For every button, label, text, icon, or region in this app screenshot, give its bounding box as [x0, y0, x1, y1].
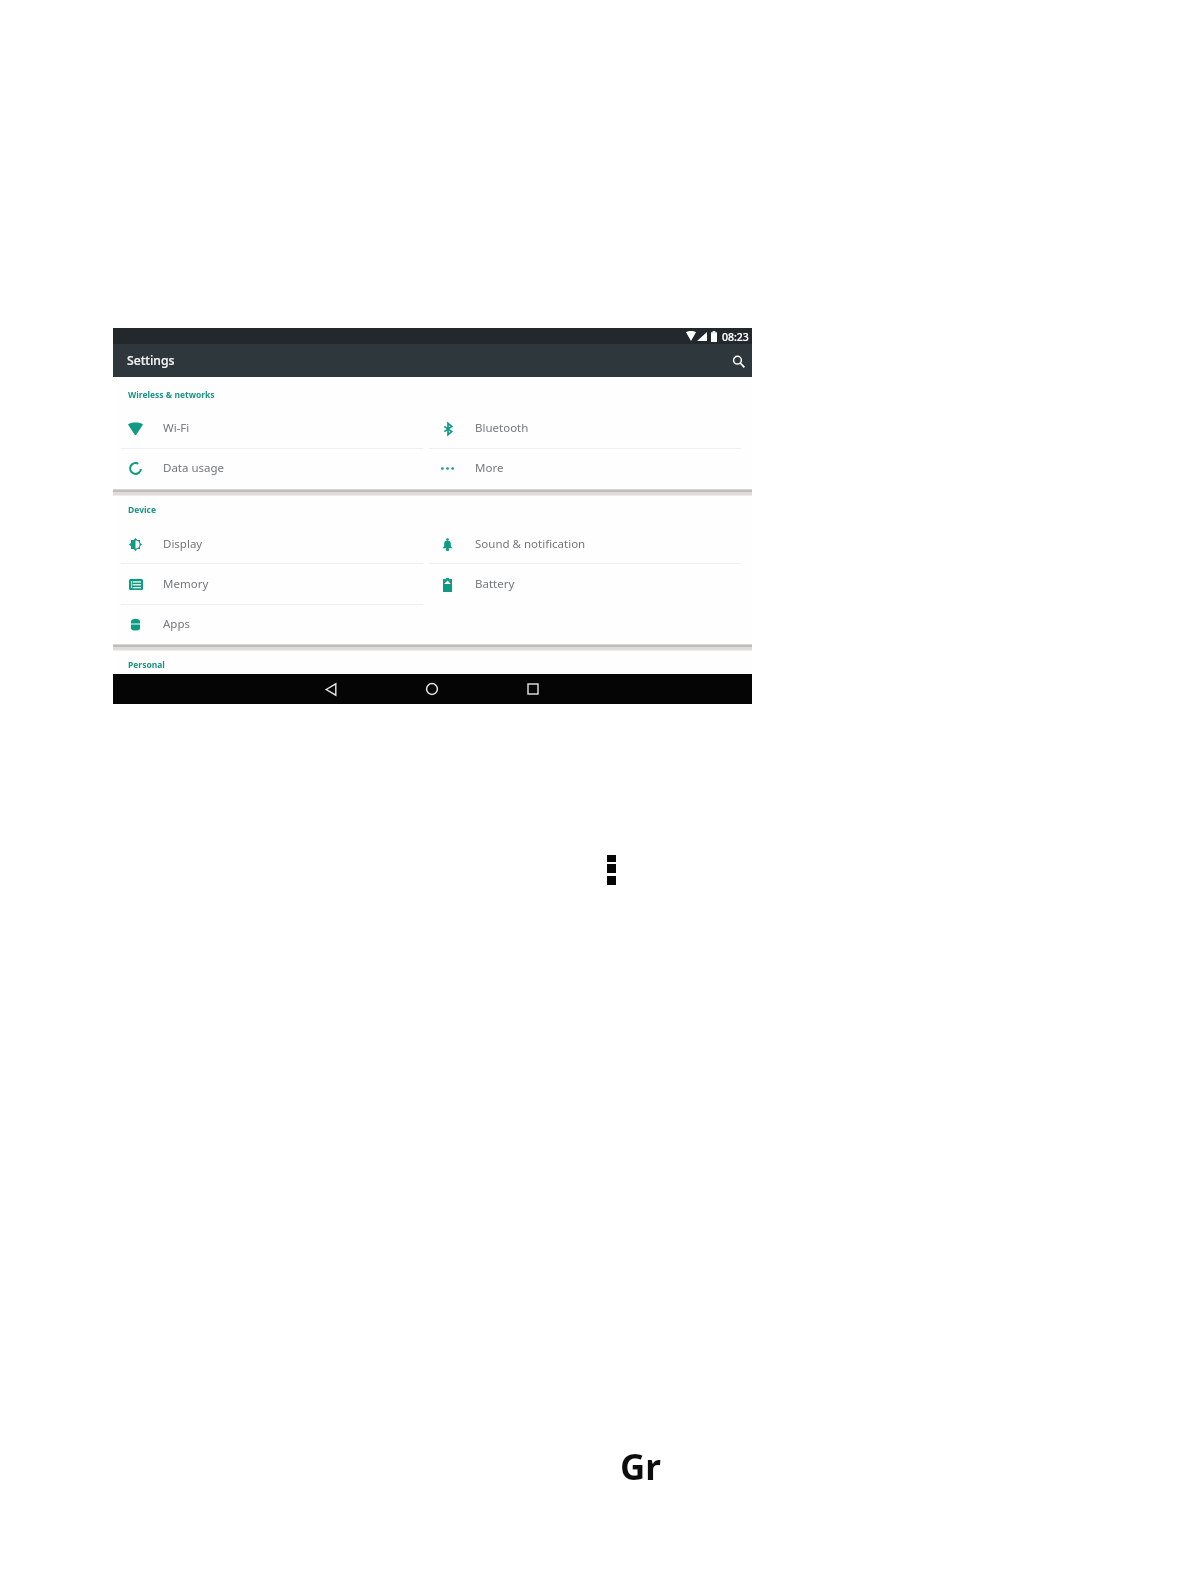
button[interactable]: Battery	[425, 564, 753, 604]
button[interactable]: Wi-Fi	[113, 408, 425, 448]
button[interactable]: Memory	[113, 564, 425, 604]
staticText: Gr	[620, 1443, 661, 1491]
staticText: More	[475, 460, 504, 476]
staticText: Sound & notification	[475, 536, 586, 552]
button[interactable]: Display	[113, 524, 425, 564]
staticText: Display	[163, 536, 203, 552]
button[interactable]: Sound & notification	[425, 524, 753, 564]
staticText: Bluetooth	[475, 420, 529, 436]
button[interactable]: Data usage	[113, 448, 425, 488]
staticText: Wireless & networks	[128, 389, 215, 401]
staticText: Data usage	[163, 460, 225, 476]
staticText: Battery	[475, 576, 515, 592]
staticText: Device	[128, 504, 156, 516]
staticText: Settings	[127, 352, 175, 369]
staticText: 08:23	[722, 330, 749, 344]
button[interactable]: Search	[725, 348, 751, 374]
button[interactable]: Bluetooth	[425, 408, 753, 448]
button[interactable]: Back	[310, 674, 352, 704]
staticText: Personal	[128, 659, 165, 671]
button[interactable]: Home	[411, 674, 453, 704]
staticText: Apps	[163, 616, 191, 632]
button[interactable]: More	[425, 448, 753, 488]
button[interactable]: Apps	[113, 604, 425, 644]
staticText: Wi-Fi	[163, 420, 190, 436]
staticText: Memory	[163, 576, 209, 592]
button[interactable]: Recents	[512, 674, 554, 704]
